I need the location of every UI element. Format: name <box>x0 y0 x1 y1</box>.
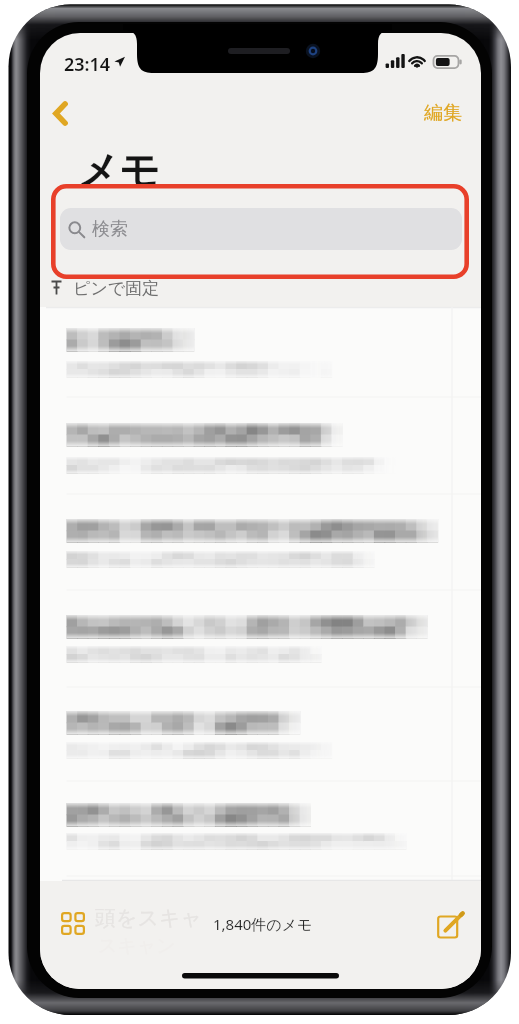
button[interactable]: Gallery view <box>50 901 95 946</box>
staticText: 編集 <box>424 101 462 125</box>
staticText: ピンで固定 <box>73 278 160 299</box>
button[interactable]: Back <box>41 94 80 133</box>
staticText: メモ <box>78 145 160 195</box>
button[interactable]: New note <box>428 902 473 947</box>
staticText: 頭をスキャ <box>95 905 202 931</box>
staticText: 検索 <box>92 218 128 241</box>
staticText: 23:14 <box>64 52 111 72</box>
button[interactable] <box>40 307 481 881</box>
button[interactable]: 編集 <box>415 94 471 132</box>
staticText: 1,840件のメモ <box>213 914 313 934</box>
button[interactable]: 検索 <box>60 208 462 250</box>
